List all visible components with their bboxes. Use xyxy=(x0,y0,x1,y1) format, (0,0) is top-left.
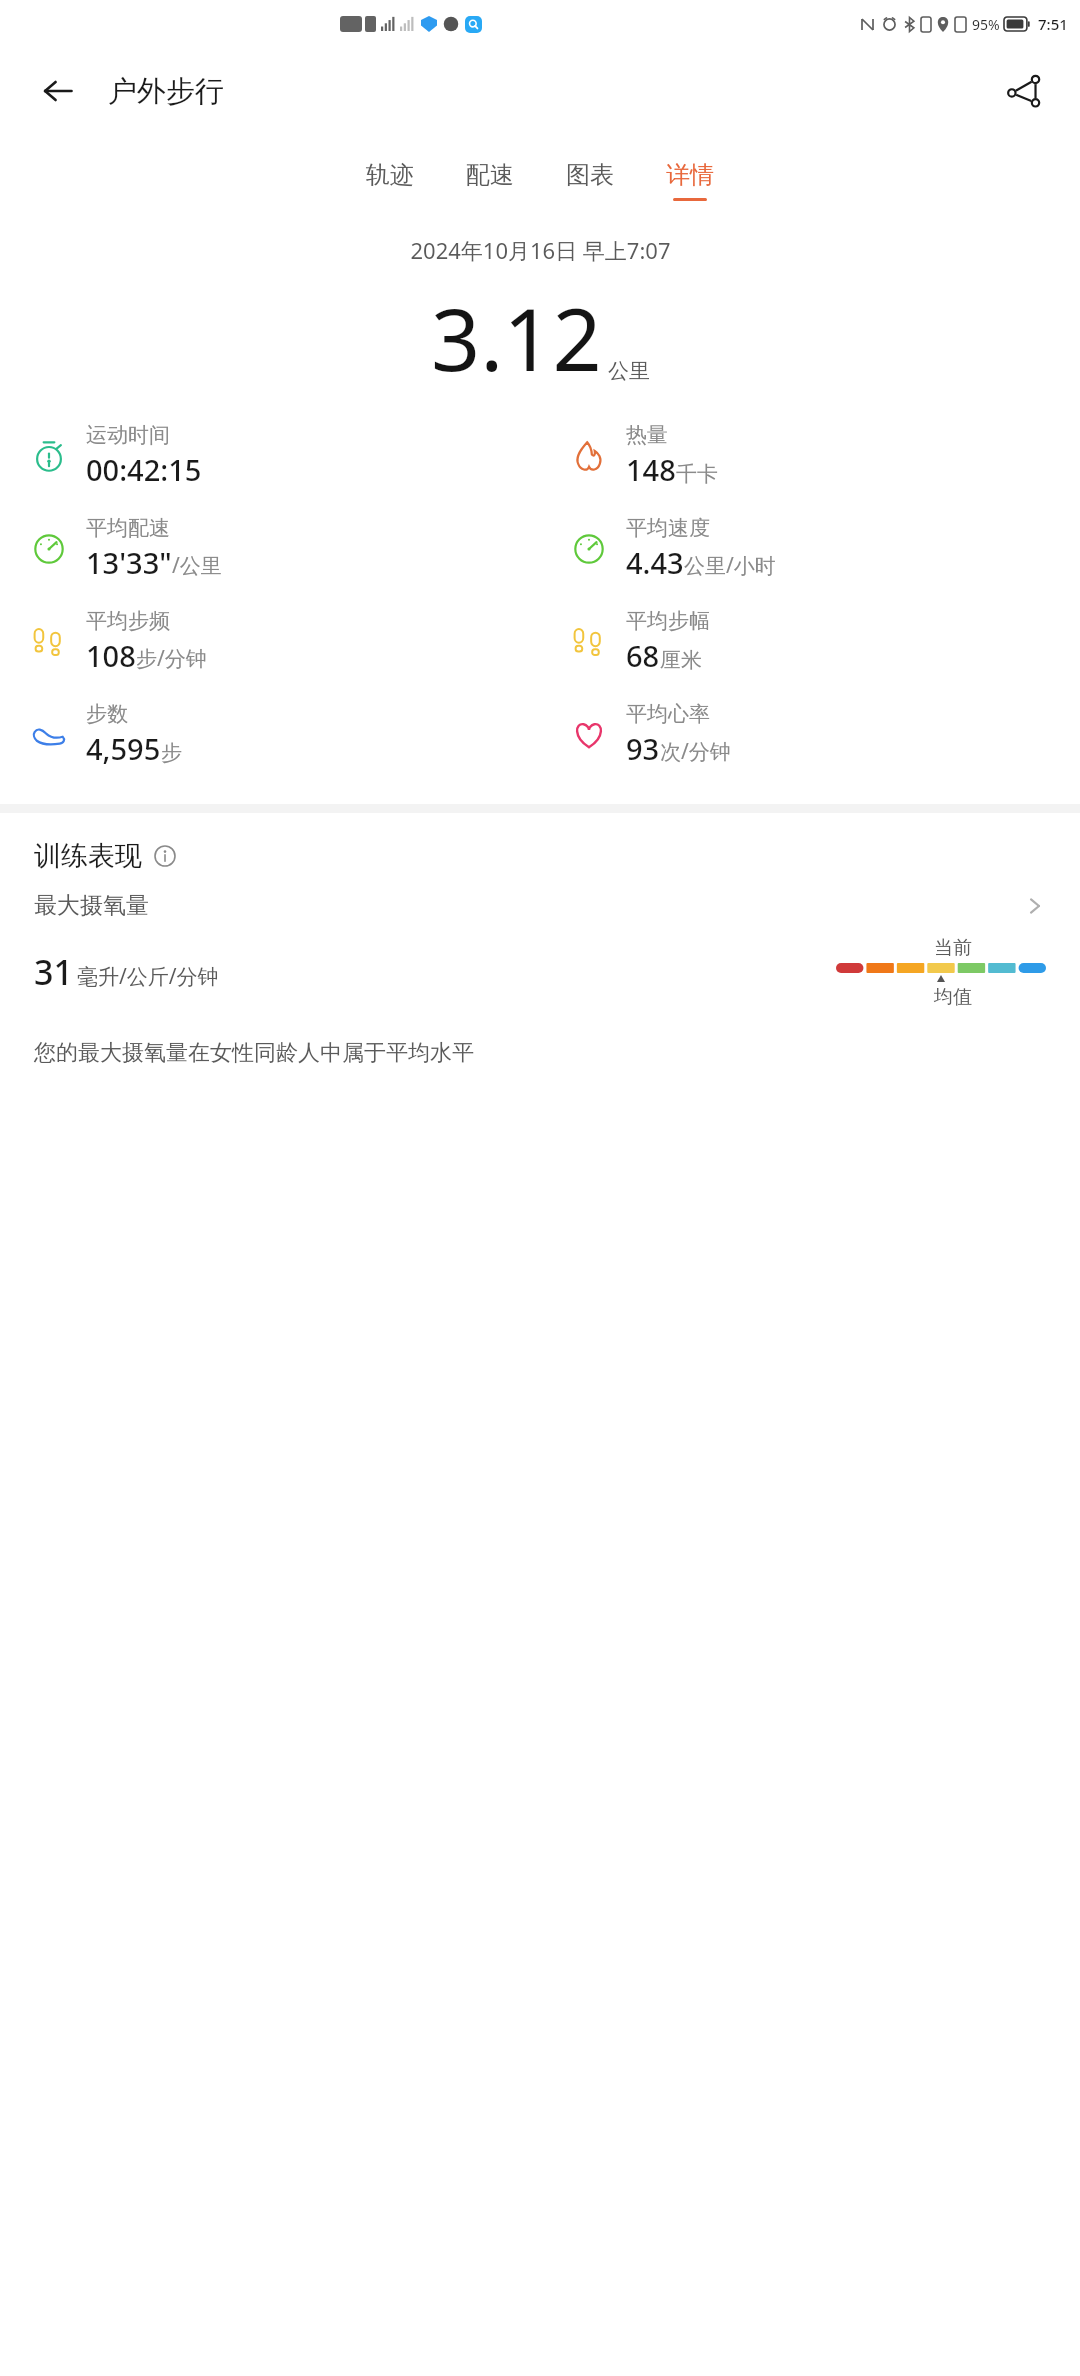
staticText: 31 xyxy=(34,949,73,995)
button[interactable]: 平均心率 xyxy=(540,697,1080,772)
staticText: 千卡 xyxy=(676,461,718,487)
staticText: 步数 xyxy=(86,701,128,727)
staticText: 4.43 xyxy=(626,543,684,582)
staticText: 公里 xyxy=(608,358,650,384)
staticText: 4,595 xyxy=(86,729,161,768)
staticText: 详情 xyxy=(666,160,714,190)
staticText: 当前 xyxy=(934,936,972,960)
button[interactable]: 平均配速 xyxy=(0,511,540,586)
button[interactable]: 平均步频 xyxy=(0,604,540,679)
staticText: 热量 xyxy=(626,422,668,448)
staticText: 95% xyxy=(972,15,1000,34)
staticText: 均值 xyxy=(934,985,972,1009)
button[interactable]: 详情 xyxy=(640,156,740,205)
staticText: 训练表现 xyxy=(34,839,142,873)
staticText: 配速 xyxy=(466,160,514,190)
staticText: 148 xyxy=(626,450,676,489)
staticText: 平均步频 xyxy=(86,608,170,634)
staticText: 108 xyxy=(86,636,136,675)
staticText: 93 xyxy=(626,729,660,768)
staticText: 轨迹 xyxy=(366,160,414,190)
staticText: 最大摄氧量 xyxy=(34,891,149,920)
button[interactable]: 运动时间 xyxy=(0,418,540,493)
staticText: 13'33" xyxy=(86,543,172,582)
staticText: 次/分钟 xyxy=(660,737,731,766)
staticText: 您的最大摄氧量在女性同龄人中属于平均水平 xyxy=(34,1039,474,1067)
staticText: 运动时间 xyxy=(86,422,170,448)
button[interactable]: 最大摄氧量 xyxy=(34,891,1046,920)
button[interactable]: 配速 xyxy=(440,156,540,205)
staticText: 平均配速 xyxy=(86,515,170,541)
staticText: 平均步幅 xyxy=(626,608,710,634)
button[interactable]: Share xyxy=(998,65,1050,117)
staticText: 68 xyxy=(626,636,660,675)
staticText: 步 xyxy=(161,740,182,766)
staticText: 图表 xyxy=(566,160,614,190)
button[interactable]: 图表 xyxy=(540,156,640,205)
staticText: 公里/小时 xyxy=(684,551,776,580)
staticText: 毫升/公斤/分钟 xyxy=(77,962,219,991)
staticText: 00:42:15 xyxy=(86,450,202,489)
staticText: 平均速度 xyxy=(626,515,710,541)
staticText: 7:51 xyxy=(1038,14,1068,34)
button[interactable]: 平均速度 xyxy=(540,511,1080,586)
staticText: 步/分钟 xyxy=(136,644,207,673)
button[interactable]: 平均步幅 xyxy=(540,604,1080,679)
staticText: 户外步行 xyxy=(108,73,224,110)
button[interactable]: Back xyxy=(34,67,82,115)
staticText: /公里 xyxy=(172,551,222,580)
button[interactable]: 步数 xyxy=(0,697,540,772)
staticText: 3.12 xyxy=(431,279,602,396)
button[interactable]: 轨迹 xyxy=(340,156,440,205)
staticText: 2024年10月16日 早上7:07 xyxy=(410,235,671,265)
button[interactable]: 热量 xyxy=(540,418,1080,493)
staticText: 平均心率 xyxy=(626,701,710,727)
button[interactable]: Info xyxy=(152,843,178,869)
staticText: 厘米 xyxy=(660,647,702,673)
